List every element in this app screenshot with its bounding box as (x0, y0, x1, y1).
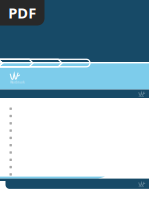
staticText: Wordmark (10, 81, 25, 84)
staticText: PDF (8, 3, 36, 22)
